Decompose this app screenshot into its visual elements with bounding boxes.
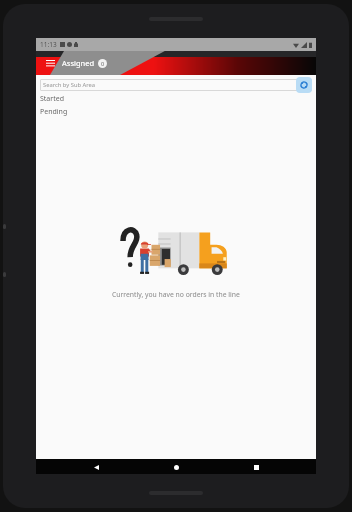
- button[interactable]: Search by Sub Area: [40, 79, 312, 91]
- staticText: Currently, you have no orders in the lin…: [112, 290, 240, 299]
- staticText: Search by Sub Area: [43, 81, 96, 89]
- button[interactable]: Pending: [40, 107, 316, 117]
- button[interactable]: Refresh orders: [296, 77, 312, 93]
- button[interactable]: Open navigation menu: [42, 55, 58, 71]
- staticText: 0: [101, 60, 105, 67]
- staticText: Pending: [40, 107, 68, 117]
- button[interactable]: Home: [169, 460, 183, 474]
- staticText: Started: [40, 94, 64, 104]
- staticText: Assigned: [62, 58, 95, 68]
- button[interactable]: Back: [89, 460, 103, 474]
- button[interactable]: Started: [40, 94, 316, 104]
- staticText: 11:13: [40, 40, 57, 49]
- button[interactable]: Recent apps: [249, 460, 263, 474]
